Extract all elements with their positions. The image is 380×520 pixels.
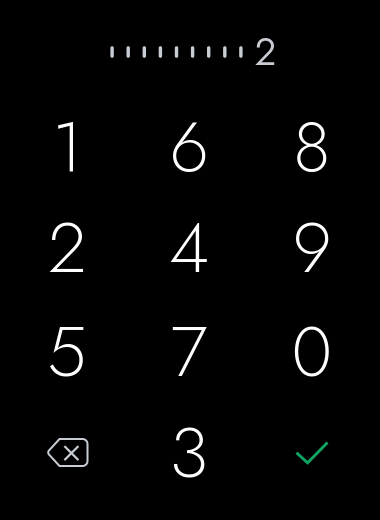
button[interactable]: 0 (251, 301, 373, 401)
staticText: 6 (169, 96, 208, 198)
button[interactable]: 6 (128, 97, 250, 197)
staticText: 2 (254, 24, 276, 79)
staticText: 0 (291, 300, 332, 402)
staticText: 9 (292, 196, 331, 298)
staticText: 5 (47, 300, 87, 402)
button[interactable]: 4 (128, 197, 250, 297)
staticText: 1 (52, 96, 82, 198)
staticText: 3 (169, 401, 208, 503)
button[interactable]: 8 (251, 97, 373, 197)
staticText: 4 (169, 196, 209, 298)
button[interactable]: 3 (128, 402, 250, 502)
staticText: 2 (48, 196, 86, 298)
button[interactable]: 5 (6, 301, 128, 401)
staticText: 7 (170, 300, 207, 402)
staticText: 8 (293, 96, 331, 198)
button[interactable]: 2 (6, 197, 128, 297)
button[interactable]: 9 (251, 197, 373, 297)
button[interactable]: 1 (6, 97, 128, 197)
button[interactable]: Delete (6, 402, 128, 502)
button[interactable]: 7 (128, 301, 250, 401)
button[interactable]: Confirm (251, 402, 373, 502)
